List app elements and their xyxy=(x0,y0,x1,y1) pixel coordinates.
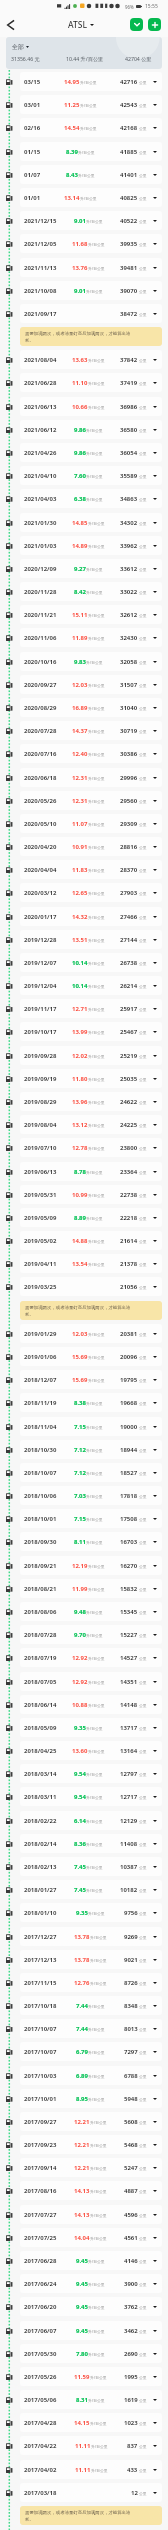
button[interactable]: 2021/12/15 xyxy=(20,211,162,230)
button[interactable]: 2021/09/17 xyxy=(20,304,162,323)
button[interactable]: 2019/05/31 xyxy=(20,1185,162,1204)
button[interactable]: 2018/08/06 xyxy=(20,1602,162,1621)
button[interactable]: 2018/11/04 xyxy=(20,1417,162,1436)
button[interactable]: 2017/06/20 xyxy=(20,2297,162,2316)
button[interactable]: 2019/07/10 xyxy=(20,1138,162,1157)
button[interactable]: 02/16 xyxy=(20,118,162,137)
button[interactable]: 2020/09/27 xyxy=(20,675,162,694)
button[interactable]: 2017/07/27 xyxy=(20,2205,162,2224)
button[interactable]: 2020/07/16 xyxy=(20,744,162,763)
button[interactable]: 2018/07/05 xyxy=(20,1672,162,1691)
button[interactable]: 2017/05/06 xyxy=(20,2390,162,2409)
button[interactable]: 2021/06/12 xyxy=(20,420,162,439)
button[interactable]: 2017/12/13 xyxy=(20,1950,162,1969)
button[interactable]: Add xyxy=(148,18,161,31)
button[interactable]: 2019/04/11 xyxy=(20,1254,162,1273)
button[interactable]: 2017/10/07 xyxy=(20,2042,162,2061)
button[interactable]: 01/15 xyxy=(20,142,162,161)
button[interactable]: 2020/05/10 xyxy=(20,814,162,833)
button[interactable]: 2018/02/14 xyxy=(20,1834,162,1853)
button[interactable]: 2020/05/26 xyxy=(20,791,162,810)
button[interactable]: 2019/12/28 xyxy=(20,930,162,949)
button[interactable]: 2018/01/27 xyxy=(20,1880,162,1899)
button[interactable]: 03/15 xyxy=(20,72,162,91)
button[interactable]: 2017/09/27 xyxy=(20,2112,162,2131)
button[interactable]: 2017/10/01 xyxy=(20,2089,162,2108)
button[interactable]: 2018/12/07 xyxy=(20,1370,162,1389)
button[interactable]: 01/01 xyxy=(20,188,162,207)
button[interactable]: 2019/10/17 xyxy=(20,1022,162,1041)
button[interactable]: 2018/02/22 xyxy=(20,1811,162,1830)
button[interactable]: 2018/10/30 xyxy=(20,1440,162,1459)
button[interactable]: 2020/06/18 xyxy=(20,768,162,787)
button[interactable]: 2019/03/25 xyxy=(20,1277,162,1296)
button[interactable]: 2018/09/21 xyxy=(20,1556,162,1575)
button[interactable]: 需要加满两次，或者油量灯亮后加满两次，才能算出油 耗。 xyxy=(20,2506,162,2525)
button[interactable]: 2019/09/19 xyxy=(20,1069,162,1088)
button[interactable]: 2019/01/29 xyxy=(20,1324,162,1343)
button[interactable]: 2017/09/14 xyxy=(20,2158,162,2177)
button[interactable]: Back xyxy=(0,12,21,37)
button[interactable]: 2018/02/13 xyxy=(20,1857,162,1876)
button[interactable]: 2020/11/28 xyxy=(20,582,162,601)
button[interactable]: 2018/03/14 xyxy=(20,1764,162,1783)
button[interactable]: 2017/09/23 xyxy=(20,2135,162,2154)
button[interactable]: 2019/12/04 xyxy=(20,976,162,995)
button[interactable]: 2019/08/29 xyxy=(20,1092,162,1111)
button[interactable]: 2017/04/22 xyxy=(20,2436,162,2455)
button[interactable]: ATSL xyxy=(68,19,94,31)
button[interactable]: 2020/11/06 xyxy=(20,628,162,647)
button[interactable]: 2019/08/04 xyxy=(20,1115,162,1134)
button[interactable]: 2021/04/03 xyxy=(20,489,162,508)
button[interactable]: 2021/06/13 xyxy=(20,397,162,416)
button[interactable]: 2021/11/13 xyxy=(20,258,162,277)
button[interactable]: 2018/07/28 xyxy=(20,1625,162,1644)
button[interactable]: 2021/12/05 xyxy=(20,234,162,253)
button[interactable]: 2018/08/21 xyxy=(20,1579,162,1598)
button[interactable]: 2018/07/19 xyxy=(20,1648,162,1667)
button[interactable]: 2019/11/17 xyxy=(20,999,162,1018)
button[interactable]: 2019/01/06 xyxy=(20,1347,162,1366)
button[interactable]: 2021/04/10 xyxy=(20,466,162,485)
button[interactable]: 2020/04/04 xyxy=(20,860,162,879)
button[interactable]: 2020/07/28 xyxy=(20,721,162,740)
button[interactable]: 2018/10/01 xyxy=(20,1509,162,1528)
button[interactable]: 2017/11/15 xyxy=(20,1973,162,1992)
button[interactable]: 2017/05/30 xyxy=(20,2344,162,2363)
button[interactable]: 2021/01/03 xyxy=(20,536,162,555)
button[interactable]: 2019/06/13 xyxy=(20,1162,162,1181)
button[interactable]: 2019/09/28 xyxy=(20,1046,162,1065)
button[interactable]: 2020/10/16 xyxy=(20,652,162,671)
button[interactable]: 2017/05/26 xyxy=(20,2367,162,2386)
button[interactable]: 2020/04/20 xyxy=(20,837,162,856)
button[interactable]: 2018/06/14 xyxy=(20,1695,162,1714)
button[interactable]: 需要加满两次，或者油量灯亮后加满两次，才能算出油 耗。 xyxy=(20,327,162,346)
button[interactable]: 2020/12/09 xyxy=(20,559,162,578)
button[interactable]: 2021/06/28 xyxy=(20,373,162,392)
button[interactable]: 2018/11/19 xyxy=(20,1393,162,1412)
button[interactable]: 03/01 xyxy=(20,95,162,114)
button[interactable]: 2017/07/25 xyxy=(20,2228,162,2247)
button[interactable]: 2017/08/16 xyxy=(20,2181,162,2200)
button[interactable]: 2018/10/06 xyxy=(20,1486,162,1505)
button[interactable]: 2021/04/26 xyxy=(20,443,162,462)
button[interactable]: Expand xyxy=(130,18,143,31)
button[interactable]: 2021/10/08 xyxy=(20,281,162,300)
button[interactable]: 2020/11/21 xyxy=(20,605,162,624)
button[interactable]: 2018/01/10 xyxy=(20,1903,162,1922)
button[interactable]: 2017/10/07 xyxy=(20,2019,162,2038)
button[interactable]: 2019/05/09 xyxy=(20,1208,162,1227)
button[interactable]: 2021/01/30 xyxy=(20,513,162,532)
button[interactable]: 2019/05/02 xyxy=(20,1231,162,1250)
button[interactable]: 2019/12/07 xyxy=(20,953,162,972)
button[interactable]: 2021/08/04 xyxy=(20,350,162,369)
button[interactable]: 2017/04/28 xyxy=(20,2413,162,2432)
button[interactable]: 2018/04/25 xyxy=(20,1741,162,1760)
button[interactable]: 2018/10/07 xyxy=(20,1463,162,1482)
button[interactable]: 2020/01/17 xyxy=(20,907,162,926)
button[interactable]: 01/07 xyxy=(20,165,162,184)
button[interactable]: 需要加满两次，或者油量灯亮后加满两次，才能算出油 耗。 xyxy=(20,1301,162,1320)
button[interactable]: 2018/05/09 xyxy=(20,1718,162,1737)
button[interactable]: 2020/03/12 xyxy=(20,883,162,902)
button[interactable]: 2017/12/27 xyxy=(20,1927,162,1946)
